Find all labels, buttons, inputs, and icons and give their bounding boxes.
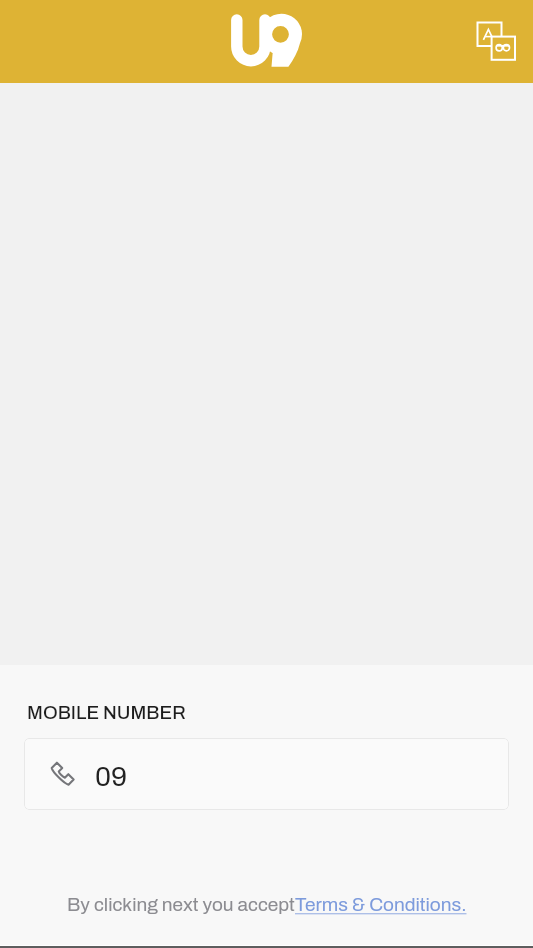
button[interactable]: Terms & Conditions. (295, 894, 467, 915)
button[interactable]: Change language (471, 16, 519, 64)
staticText: By clicking next you accept (67, 894, 295, 915)
button[interactable]: 09 (24, 738, 509, 810)
staticText: 09 (95, 761, 128, 791)
staticText: MOBILE NUMBER (27, 702, 186, 722)
